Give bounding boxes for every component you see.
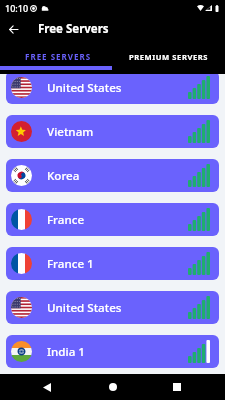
staticText: India 1 (47, 344, 85, 360)
button[interactable]: Home (99, 374, 127, 400)
staticText: Korea (47, 168, 80, 184)
staticText: Vietnam (47, 124, 94, 140)
staticText: United States (47, 80, 122, 96)
button[interactable]: PREMIUM SERVERS (112, 42, 225, 66)
staticText: PREMIUM SERVERS (129, 52, 208, 62)
button[interactable]: United States (6, 74, 219, 104)
button[interactable]: Back (33, 374, 61, 400)
staticText: France 1 (47, 256, 94, 272)
button[interactable]: FREE SERVERS (0, 42, 112, 66)
staticText: France (47, 212, 85, 228)
button[interactable]: India 1 (6, 335, 219, 368)
button[interactable]: United States (6, 291, 219, 324)
staticText: United States (47, 300, 122, 316)
button[interactable]: Back (0, 16, 26, 42)
staticText: FREE SERVERS (25, 51, 92, 62)
button[interactable]: Korea (6, 159, 219, 192)
button[interactable]: Vietnam (6, 115, 219, 148)
button[interactable]: France 1 (6, 247, 219, 280)
button[interactable]: Recents (163, 374, 191, 400)
button[interactable]: France (6, 203, 219, 236)
staticText: Free Servers (38, 21, 109, 37)
staticText: 10:10 (5, 2, 29, 14)
